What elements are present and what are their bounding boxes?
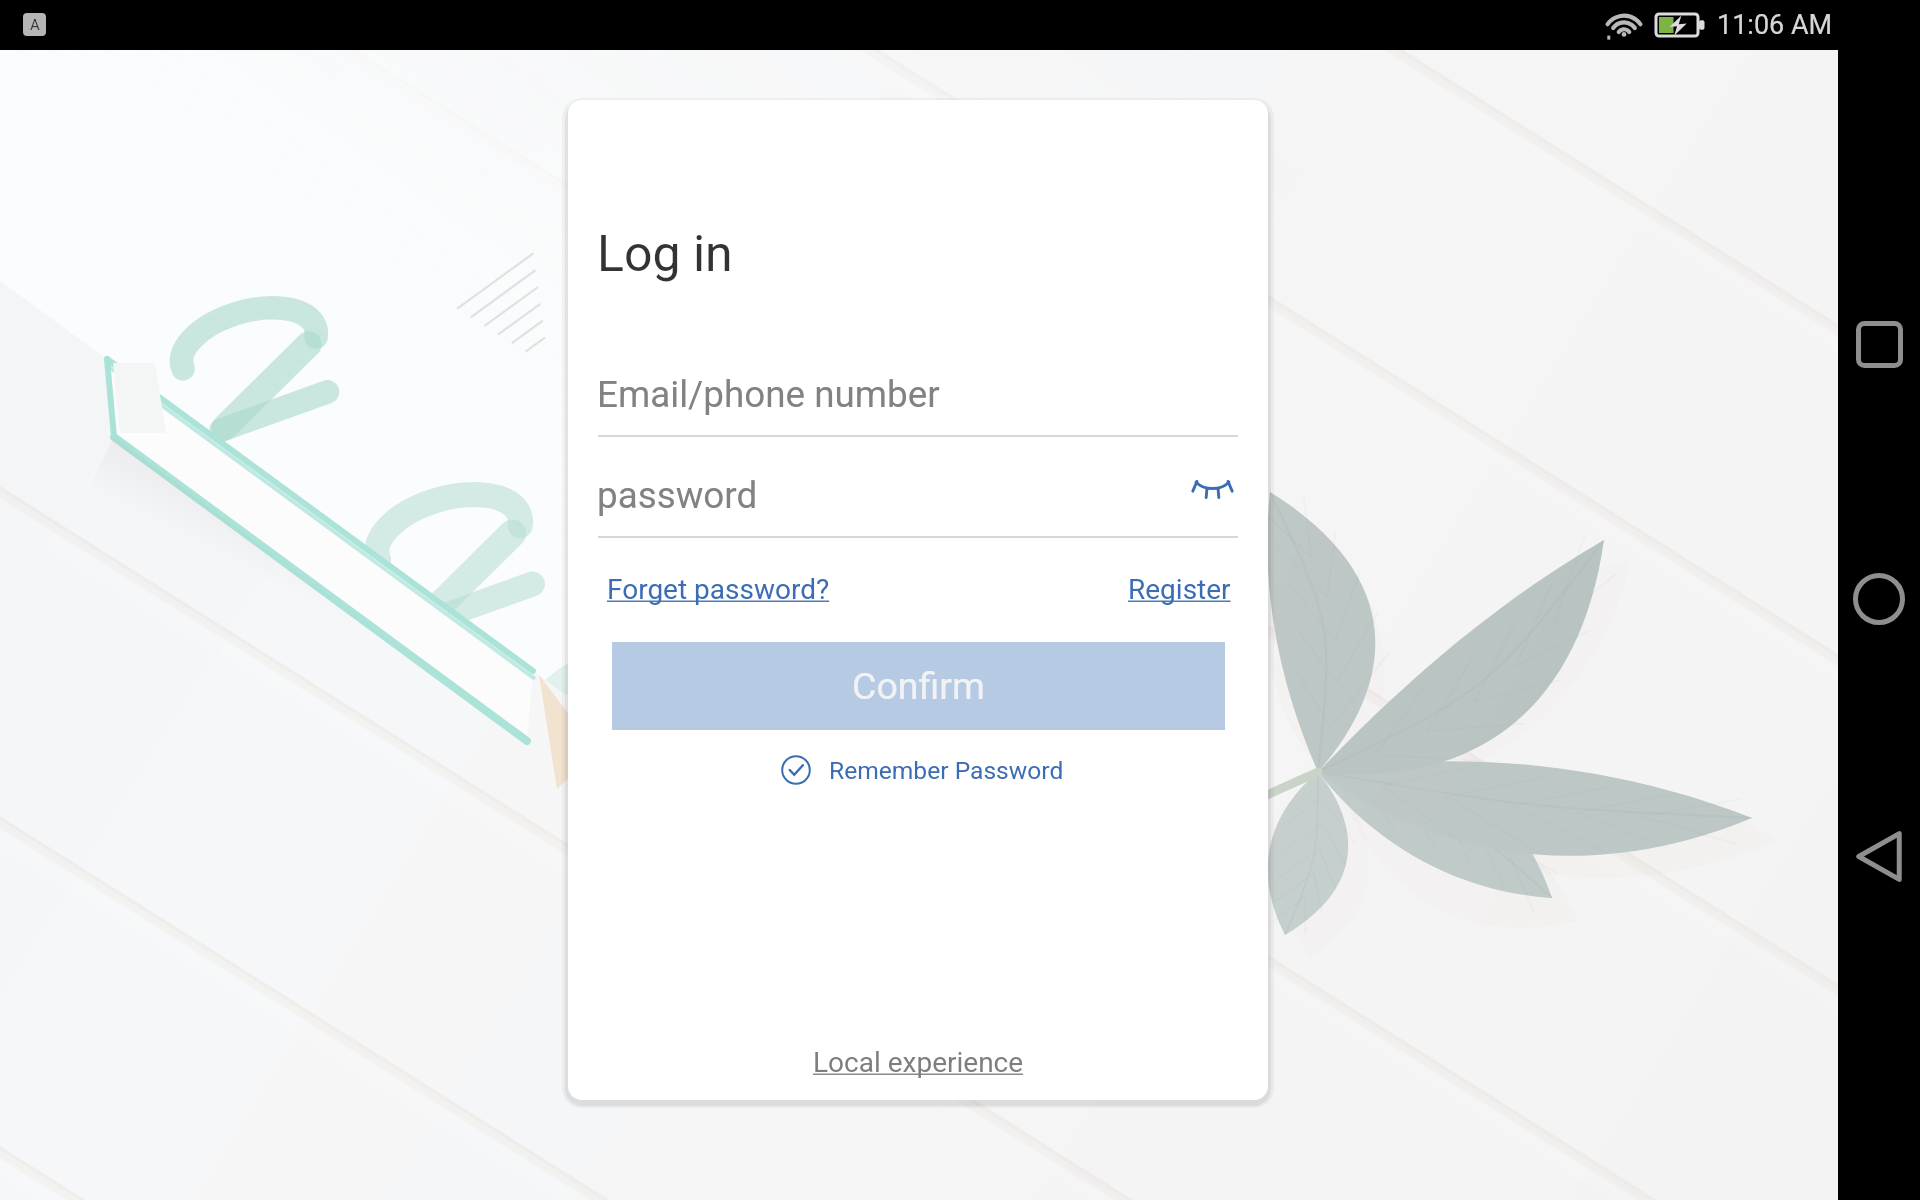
button[interactable]: Local experience xyxy=(813,1031,1024,1077)
button[interactable]: Show password xyxy=(1180,455,1244,511)
staticText: Remember Password xyxy=(829,756,1064,785)
button[interactable]: Remember Password xyxy=(781,745,1064,795)
button[interactable]: Register xyxy=(1108,560,1231,604)
staticText: Forget password? xyxy=(607,573,830,606)
staticText: Local experience xyxy=(813,1046,1024,1079)
button[interactable]: password xyxy=(598,463,1178,537)
button[interactable]: Forget password? xyxy=(607,560,830,604)
staticText: Log in xyxy=(597,225,733,284)
staticText: password xyxy=(597,474,758,517)
staticText: A xyxy=(30,16,40,34)
button[interactable]: Back xyxy=(1839,816,1919,896)
staticText: Confirm xyxy=(852,664,985,708)
staticText: Register xyxy=(1128,573,1231,606)
staticText: Email/phone number xyxy=(597,373,940,416)
staticText: 11:06 AM xyxy=(1717,9,1833,41)
button[interactable]: Home xyxy=(1839,559,1919,639)
button[interactable]: Email/phone number xyxy=(598,362,1238,436)
button[interactable]: Confirm xyxy=(612,642,1225,730)
button[interactable]: Recents xyxy=(1839,304,1919,384)
